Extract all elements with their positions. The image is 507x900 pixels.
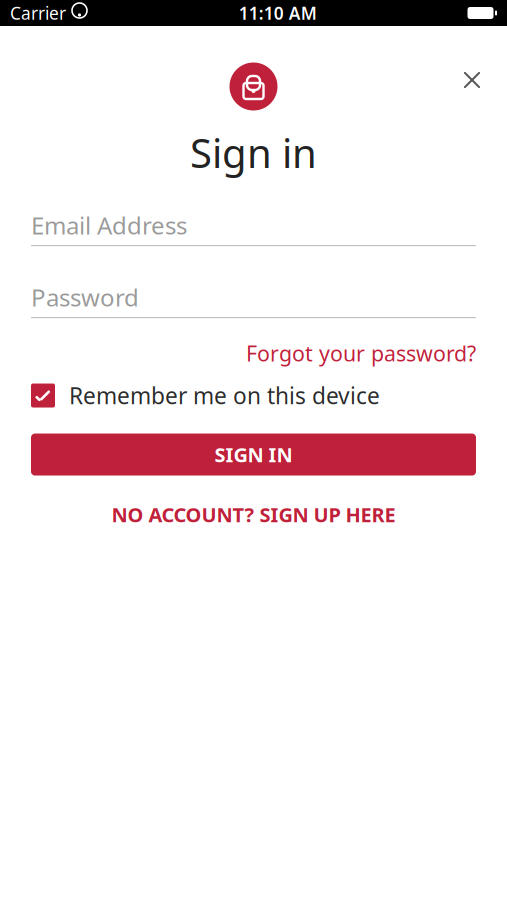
button[interactable]: Remember me on this device [0, 380, 507, 410]
staticText: Email Address [31, 209, 187, 241]
button[interactable]: Forgot your password? [246, 339, 476, 367]
staticText: SIGN IN [214, 441, 292, 468]
staticText: Forgot your password? [246, 339, 476, 367]
staticText: 11:10 AM [239, 1, 317, 24]
button[interactable]: NO ACCOUNT? SIGN UP HERE [0, 497, 507, 531]
button[interactable]: Password [0, 283, 507, 318]
button[interactable]: SIGN IN [0, 433, 507, 475]
button[interactable]: Email Address [0, 211, 507, 246]
button[interactable]: Close [449, 57, 495, 103]
staticText: Remember me on this device [69, 380, 380, 410]
staticText: Password [31, 281, 139, 313]
staticText: Sign in [190, 126, 317, 179]
staticText: Carrier [10, 1, 66, 24]
staticText: NO ACCOUNT? SIGN UP HERE [111, 501, 395, 528]
